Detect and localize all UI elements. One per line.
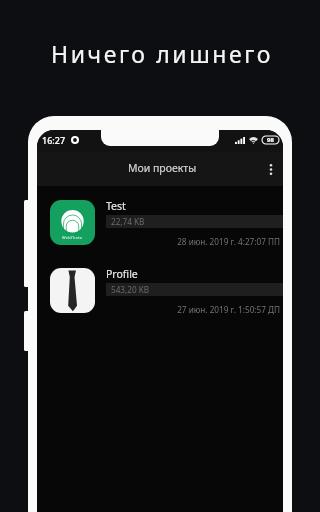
button[interactable]: Profile [37,254,283,322]
staticText: 543,20 KB [111,284,150,295]
staticText: Мои проекты [128,161,197,175]
staticText: 16:27 [42,134,66,146]
staticText: WebTheta [62,235,83,240]
staticText: 22,74 KB [111,216,145,227]
button[interactable]: More options [259,157,283,181]
staticText: Ничего лишнего [2,38,320,69]
staticText: 98 [267,136,274,144]
staticText: 27 июн. 2019 г. 1:50:57 ДП [106,304,280,315]
button[interactable]: WebTheta [37,186,283,254]
staticText: Test [106,199,126,213]
staticText: Profile [106,267,138,281]
staticText: 28 июн. 2019 г. 4:27:07 ПП [106,236,280,247]
